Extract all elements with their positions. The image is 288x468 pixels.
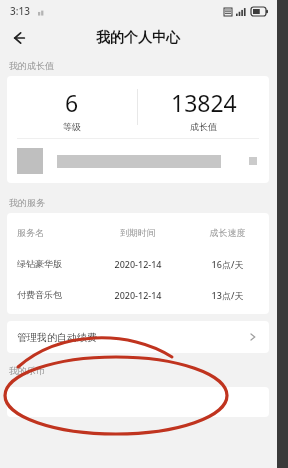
staticText: 我的乐币 [9, 365, 45, 376]
staticText: 2020-12-14 [90, 258, 186, 270]
button[interactable] [7, 139, 269, 183]
staticText: 到期时间 [90, 227, 186, 238]
staticText: 我的服务 [9, 197, 45, 208]
staticText: 成长速度 [186, 227, 269, 238]
staticText: 成长值 [190, 121, 217, 132]
staticText: 我的个人中心 [96, 29, 180, 47]
staticText: 13824 [171, 87, 237, 118]
staticText: 16点/天 [186, 258, 269, 270]
staticText: 3:13 [10, 4, 30, 18]
staticText: 绿钻豪华版 [17, 258, 90, 269]
button[interactable]: Back [4, 23, 34, 53]
staticText: 服务名 [17, 227, 90, 238]
staticText: 我的成长值 [9, 60, 54, 71]
button[interactable]: 管理我的自动续费 [7, 321, 269, 353]
staticText: 管理我的自动续费 [17, 331, 97, 344]
staticText: 6 [65, 87, 79, 118]
staticText: 13点/天 [186, 289, 269, 301]
staticText: 等级 [63, 121, 81, 132]
staticText: 付费音乐包 [17, 289, 90, 300]
staticText: 2020-12-14 [90, 289, 186, 301]
